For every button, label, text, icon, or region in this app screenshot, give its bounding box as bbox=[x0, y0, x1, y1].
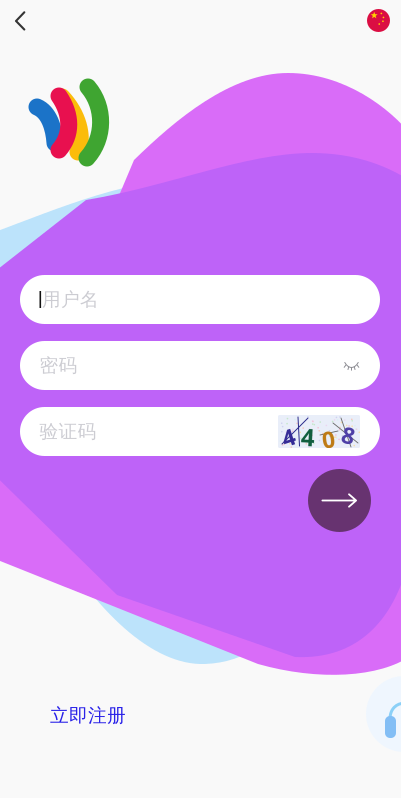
staticText: 8 bbox=[342, 420, 355, 450]
button[interactable]: Change language bbox=[357, 0, 400, 42]
button[interactable]: Refresh captcha bbox=[278, 415, 360, 448]
staticText: 用户名 bbox=[42, 288, 99, 311]
staticText: 4 bbox=[301, 421, 315, 453]
button[interactable]: Sign in bbox=[308, 469, 371, 532]
staticText: 立即注册 bbox=[50, 704, 126, 727]
staticText: 验证码 bbox=[39, 420, 96, 443]
button[interactable]: 立即注册 bbox=[44, 697, 132, 734]
button[interactable]: Show password bbox=[335, 350, 360, 380]
staticText: 4 bbox=[282, 422, 295, 452]
staticText: 0 bbox=[322, 424, 335, 454]
button[interactable]: Back bbox=[4, 1, 38, 41]
staticText: 密码 bbox=[39, 354, 77, 377]
